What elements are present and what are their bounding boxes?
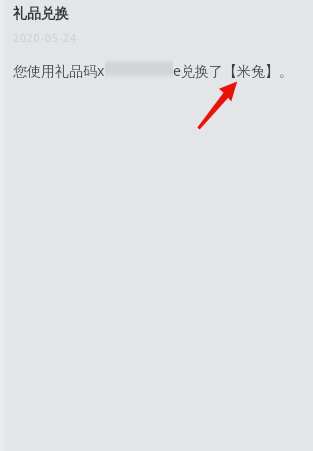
- staticText: 您使用礼品码x: [13, 61, 105, 80]
- staticText: 2020-05-24: [13, 31, 78, 45]
- staticText: e兑换了【米兔】。: [173, 61, 293, 80]
- other: Annotation arrow pointing to 米兔: [0, 0, 313, 451]
- staticText: 礼品兑换: [13, 5, 69, 23]
- button[interactable]: 礼品兑换: [0, 0, 313, 88]
